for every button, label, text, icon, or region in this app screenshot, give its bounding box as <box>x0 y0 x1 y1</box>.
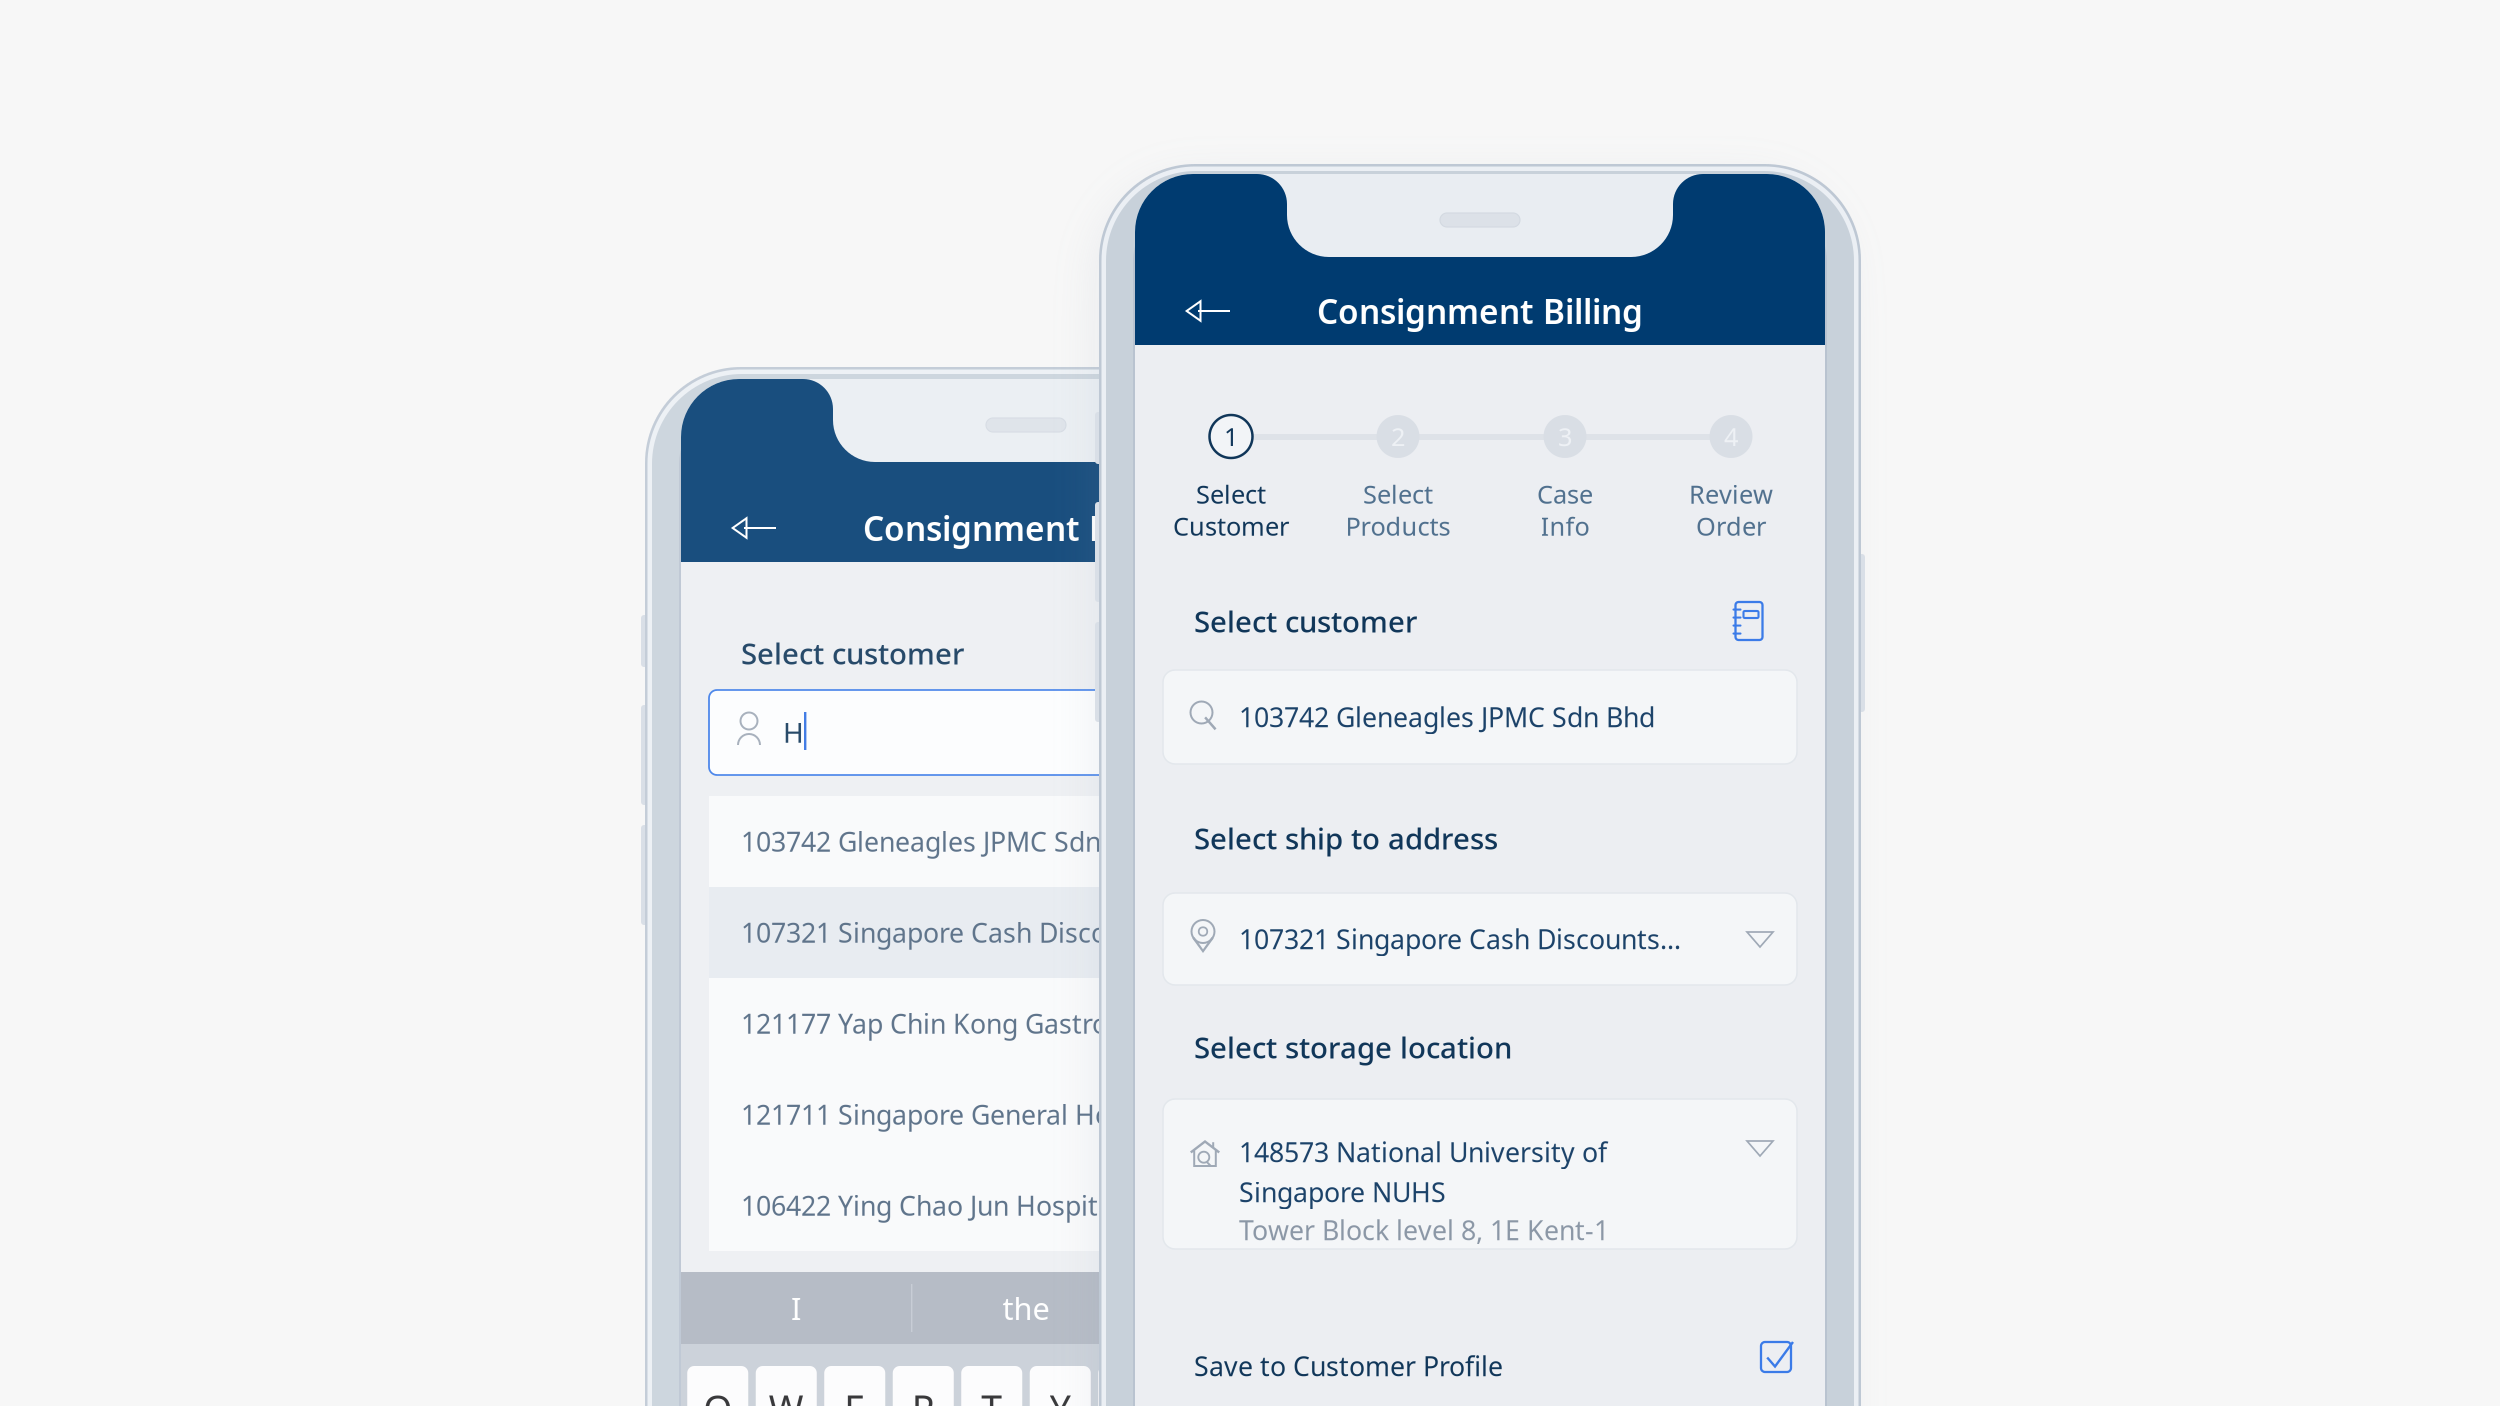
staticText: E <box>844 1383 865 1406</box>
button[interactable]: I <box>681 1272 911 1344</box>
staticText: 121711 Singapore General Hospital <box>741 1097 1179 1132</box>
button[interactable]: T <box>961 1366 1022 1406</box>
button[interactable]: R <box>893 1366 954 1406</box>
staticText: Q <box>703 1383 732 1406</box>
staticText: Order <box>1696 509 1766 543</box>
button[interactable]: W <box>756 1366 817 1406</box>
staticText: Select <box>1363 477 1433 511</box>
staticText: 121177 Yap Chin Kong Gastroenter <box>741 1006 1175 1041</box>
staticText: U <box>1115 1383 1142 1406</box>
button[interactable]: Customer directory <box>1732 602 1763 640</box>
button[interactable]: U <box>1098 1366 1159 1406</box>
staticText: Save to Customer Profile <box>1194 1348 1503 1384</box>
staticText: 107321 Singapore Cash Discounts <box>741 915 1162 950</box>
staticText: Info <box>1540 509 1589 543</box>
button[interactable]: 1 <box>1146 415 1316 545</box>
staticText: Select storage location <box>1194 1027 1512 1066</box>
button[interactable]: Y <box>1030 1366 1091 1406</box>
staticText: 3 <box>1558 420 1572 453</box>
button[interactable]: 103742 Gleneagles JPMC Sdn Bhd <box>709 796 1343 887</box>
button[interactable]: 121177 Yap Chin Kong Gastroenter <box>709 978 1343 1069</box>
staticText: Customer <box>1173 509 1289 543</box>
staticText: Singapore NUHS <box>1239 1174 1446 1210</box>
button[interactable]: 107321 Singapore Cash Discounts <box>709 887 1343 978</box>
button[interactable]: 121711 Singapore General Hospital <box>709 1069 1343 1160</box>
staticText: Review <box>1689 477 1773 511</box>
staticText: 148573 National University of <box>1239 1134 1607 1170</box>
staticText: Consignment Billing <box>863 506 1189 550</box>
staticText: 1 <box>1224 420 1238 453</box>
staticText: 103742 Gleneagles JPMC Sdn Bhd <box>1239 699 1655 735</box>
button[interactable]: Save to Customer Profile <box>1165 1338 1795 1394</box>
staticText: 107321 Singapore Cash Discounts… <box>1239 921 1681 957</box>
staticText: W <box>769 1383 804 1406</box>
staticText: Case <box>1537 477 1593 511</box>
button[interactable]: Back <box>711 492 797 564</box>
staticText: Select <box>1196 477 1266 511</box>
button[interactable]: 3 <box>1480 415 1650 545</box>
staticText: Products <box>1345 509 1450 543</box>
staticText: the <box>1002 1288 1049 1328</box>
button[interactable]: O <box>1235 1366 1296 1406</box>
staticText: T <box>981 1383 1002 1406</box>
staticText: I <box>791 1288 801 1328</box>
button[interactable]: 148573 National University of <box>1163 1099 1797 1249</box>
button[interactable]: Back <box>1165 275 1251 347</box>
button[interactable]: E <box>824 1366 885 1406</box>
button[interactable]: Q <box>687 1366 748 1406</box>
button[interactable]: I <box>1167 1366 1228 1406</box>
staticText: Y <box>1050 1383 1071 1406</box>
staticText: R <box>912 1383 935 1406</box>
button[interactable]: P <box>1304 1366 1365 1406</box>
button[interactable]: 2 <box>1313 415 1483 545</box>
button[interactable]: the <box>911 1272 1141 1344</box>
button[interactable]: 4 <box>1646 415 1816 545</box>
staticText: 103742 Gleneagles JPMC Sdn Bhd <box>741 824 1157 859</box>
staticText: 2 <box>1391 420 1405 453</box>
button[interactable]: 106422 Ying Chao Jun Hospital <box>709 1160 1343 1251</box>
staticText: Consignment Billing <box>1317 289 1643 333</box>
staticText: H <box>783 713 804 751</box>
staticText: Select customer <box>1194 601 1417 640</box>
button[interactable]: 103742 Gleneagles JPMC Sdn Bhd <box>1163 670 1797 764</box>
staticText: 4 <box>1724 420 1738 453</box>
staticText: Tower Block level 8, 1E Kent-1 <box>1239 1212 1609 1248</box>
button[interactable]: 107321 Singapore Cash Discounts… <box>1163 893 1797 985</box>
staticText: Select customer <box>741 633 964 672</box>
staticText: Select ship to address <box>1194 818 1498 857</box>
staticText: 106422 Ying Chao Jun Hospital <box>741 1188 1120 1223</box>
